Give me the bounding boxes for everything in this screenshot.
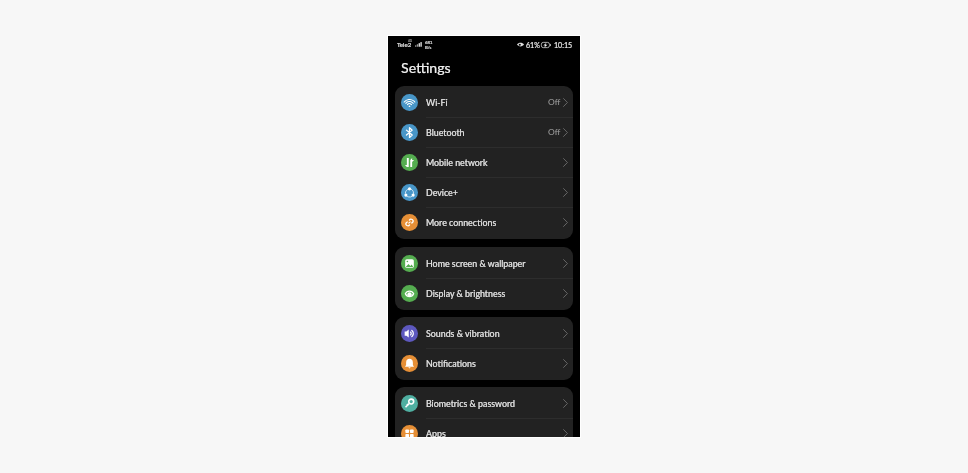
staticText: Off: [548, 97, 561, 107]
staticText: Display & brightness: [426, 288, 506, 299]
staticText: More connections: [426, 217, 497, 228]
button[interactable]: Biometrics & password: [395, 388, 573, 418]
button[interactable]: Notifications: [395, 348, 573, 378]
staticText: Sounds & vibration: [426, 328, 500, 339]
staticText: Notifications: [426, 358, 476, 369]
staticText: B/s: [425, 45, 432, 50]
button[interactable]: Bluetooth: [395, 117, 573, 147]
staticText: Apps: [426, 428, 446, 437]
button[interactable]: Device+: [395, 177, 573, 207]
staticText: 61%: [526, 41, 540, 49]
staticText: 4G: [408, 39, 413, 43]
staticText: 6R1: [425, 40, 433, 45]
staticText: Wi-Fi: [426, 97, 448, 108]
button[interactable]: Mobile network: [395, 147, 573, 177]
button[interactable]: Wi-Fi: [395, 87, 573, 117]
staticText: Settings: [401, 59, 451, 76]
button[interactable]: Sounds & vibration: [395, 318, 573, 348]
staticText: Biometrics & password: [426, 398, 515, 409]
other: Eye comfort: [517, 42, 524, 47]
button[interactable]: Apps: [395, 418, 573, 437]
staticText: Off: [548, 127, 561, 137]
staticText: Home screen & wallpaper: [426, 258, 526, 269]
staticText: Tele2: [397, 41, 412, 48]
staticText: 10:15: [554, 41, 573, 49]
staticText: Mobile network: [426, 157, 488, 168]
staticText: Bluetooth: [426, 127, 465, 138]
staticText: Device+: [426, 187, 458, 198]
button[interactable]: Home screen & wallpaper: [395, 248, 573, 278]
button[interactable]: More connections: [395, 207, 573, 237]
button[interactable]: Display & brightness: [395, 278, 573, 308]
